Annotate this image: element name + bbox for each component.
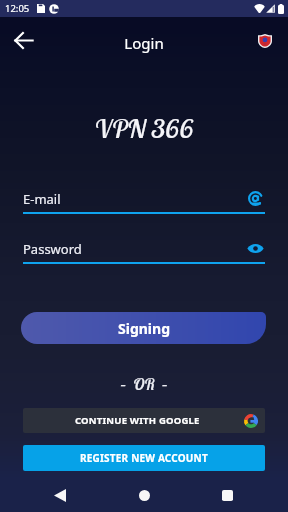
staticText: VPN 366 bbox=[0, 112, 288, 145]
button[interactable]: Back bbox=[9, 26, 37, 54]
button[interactable]: REGISTER NEW ACCOUNT bbox=[23, 445, 265, 471]
button[interactable]: Email bbox=[245, 188, 265, 208]
staticText: E-mail bbox=[23, 190, 61, 208]
button[interactable]: CONTINUE WITH GOOGLE bbox=[23, 408, 265, 433]
button[interactable]: Show password bbox=[245, 238, 265, 258]
staticText: Signing bbox=[118, 319, 170, 338]
button[interactable]: E-mail bbox=[23, 188, 265, 214]
staticText: – OR – bbox=[0, 374, 288, 394]
staticText: Login bbox=[0, 33, 288, 53]
button[interactable]: Password bbox=[23, 238, 265, 264]
staticText: 12:05 bbox=[5, 2, 30, 15]
button[interactable]: Back bbox=[44, 478, 76, 512]
button[interactable]: Signing bbox=[21, 312, 266, 344]
staticText: REGISTER NEW ACCOUNT bbox=[80, 451, 208, 465]
staticText: Password bbox=[23, 240, 82, 258]
button[interactable]: Recents bbox=[211, 478, 243, 512]
button[interactable]: Home bbox=[128, 478, 160, 512]
staticText: CONTINUE WITH GOOGLE bbox=[75, 414, 200, 427]
button[interactable]: VPN logo bbox=[251, 27, 278, 54]
